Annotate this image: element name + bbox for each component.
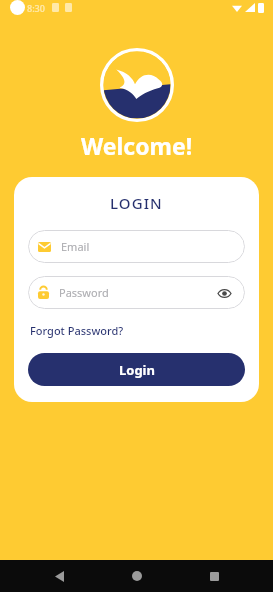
button[interactable]: Password field xyxy=(28,276,245,309)
staticText: Forgot Password? xyxy=(30,323,124,338)
button[interactable]: Back xyxy=(41,560,77,592)
button[interactable]: Email field xyxy=(28,230,245,263)
staticText: 8:30 xyxy=(27,2,45,14)
staticText: LOGIN xyxy=(110,193,163,213)
button[interactable]: Login xyxy=(28,353,245,386)
staticText: Password xyxy=(59,285,109,300)
button[interactable]: Home xyxy=(119,560,155,592)
button[interactable]: Recent apps xyxy=(196,560,232,592)
button[interactable]: Show password xyxy=(215,284,233,302)
staticText: Login xyxy=(119,361,155,379)
staticText: Email xyxy=(61,239,90,254)
button[interactable]: Forgot Password? xyxy=(28,321,126,340)
staticText: Welcome! xyxy=(81,130,193,161)
